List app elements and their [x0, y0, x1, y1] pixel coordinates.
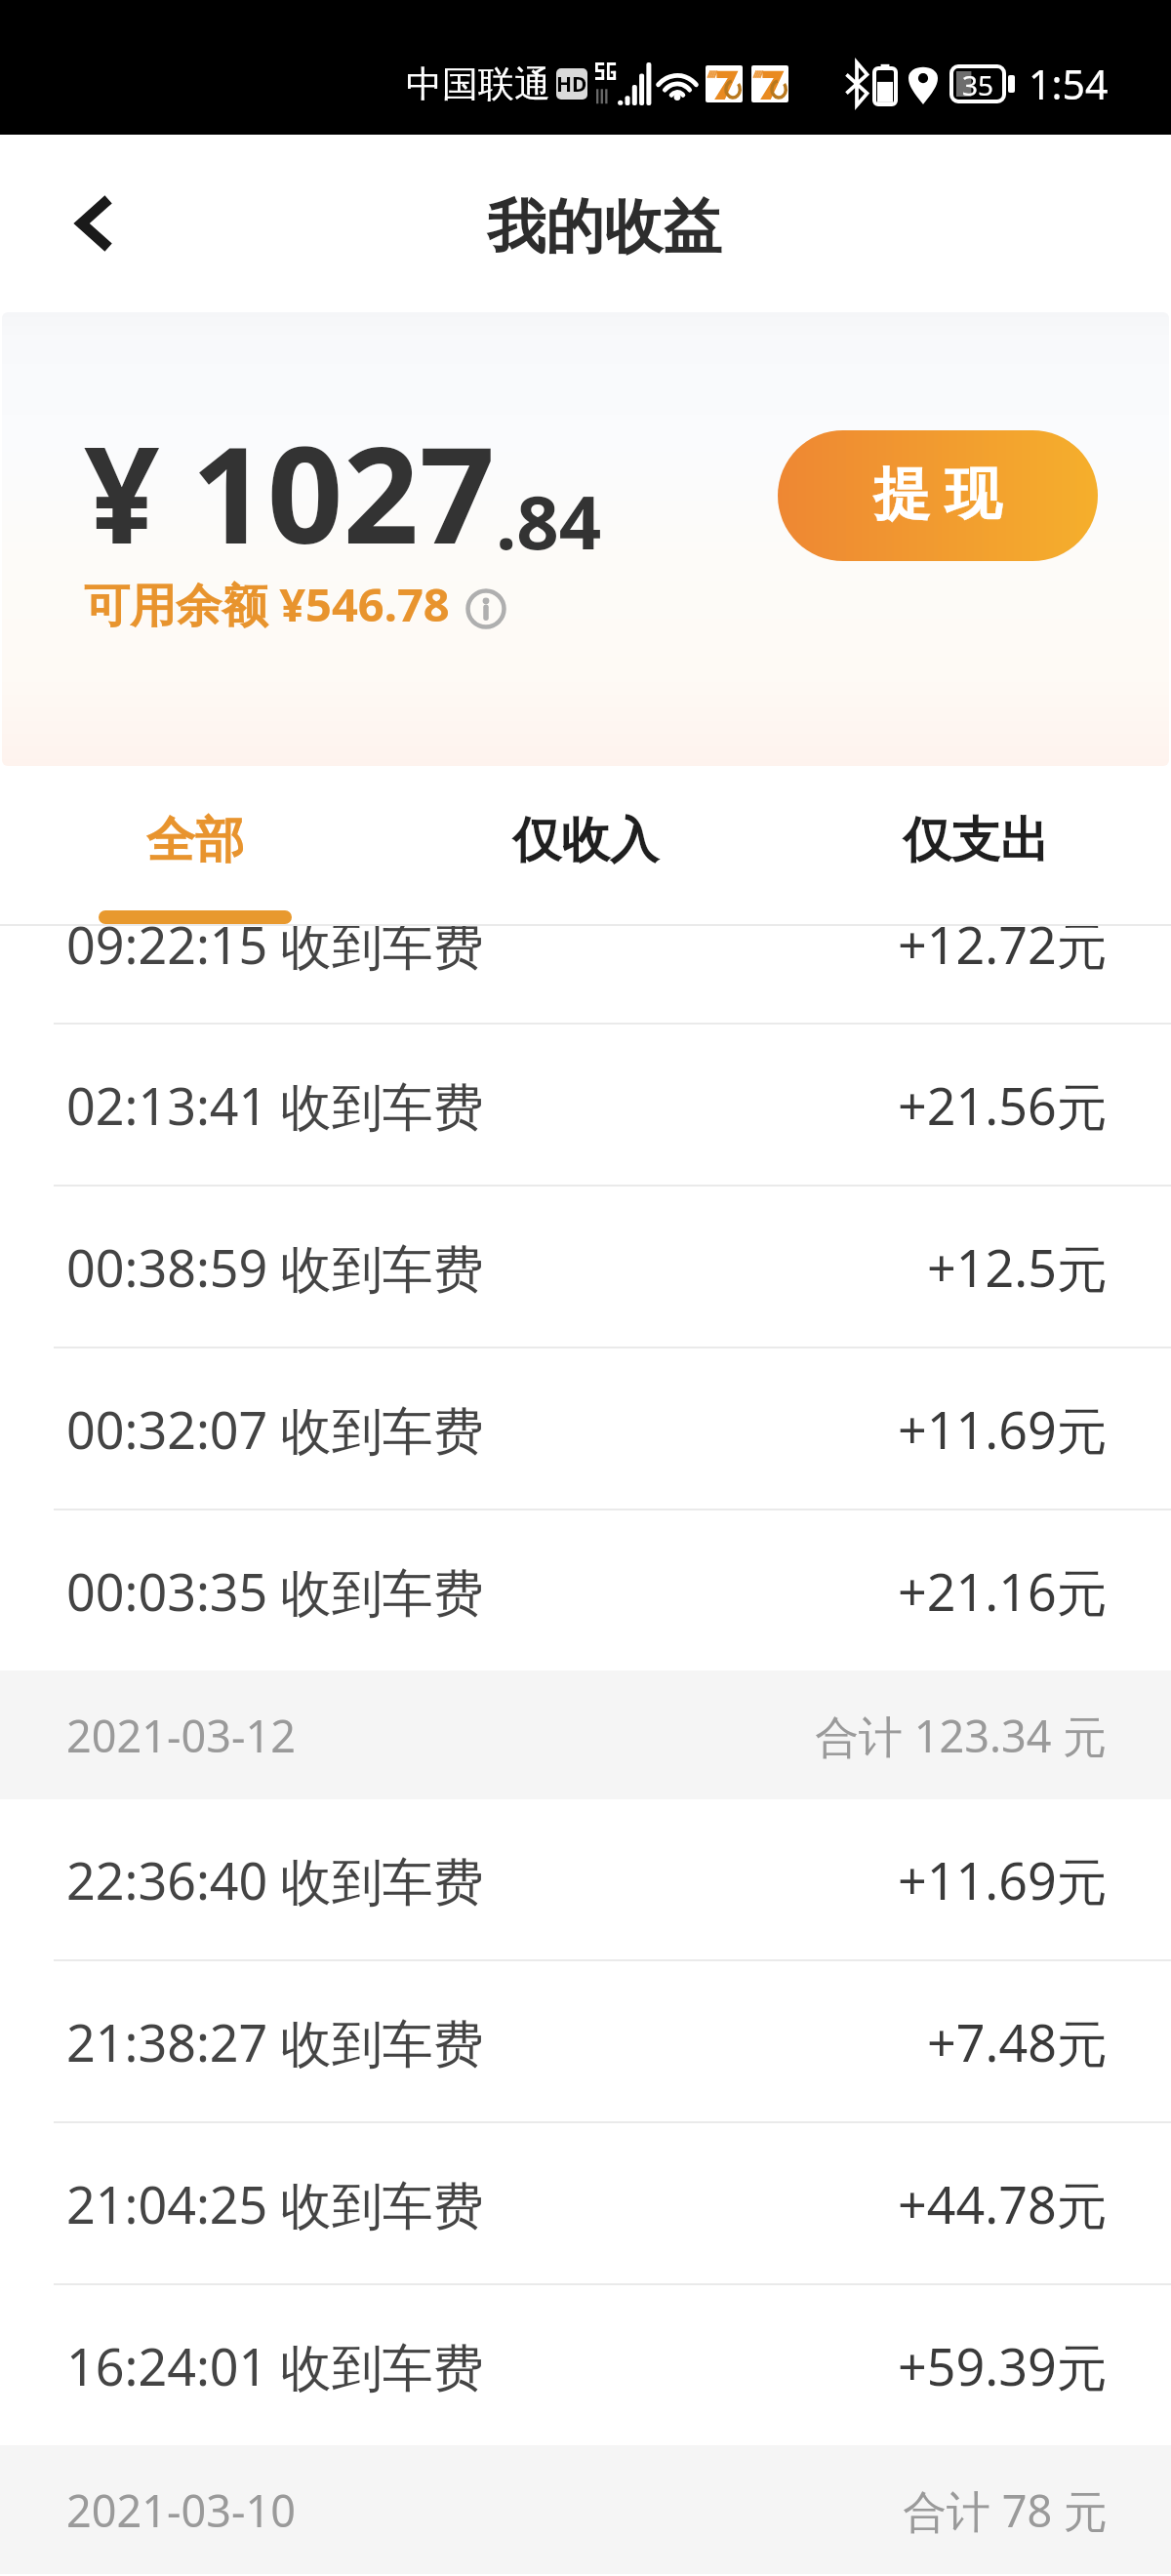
- staticText: 合计 78 元: [903, 2480, 1108, 2540]
- button[interactable]: 09:22:15 收到车费: [0, 926, 1171, 1023]
- staticText: +11.69元: [898, 1394, 1108, 1464]
- button[interactable]: 00:38:59 收到车费: [0, 1187, 1171, 1347]
- staticText: ¥: [84, 402, 160, 583]
- button[interactable]: 仅收入: [390, 767, 781, 924]
- staticText: 我的收益: [487, 190, 721, 264]
- staticText: +12.72元: [898, 926, 1108, 979]
- button[interactable]: 00:03:35 收到车费: [0, 1510, 1171, 1670]
- staticText: 35: [962, 66, 994, 101]
- staticText: +11.69元: [898, 1845, 1108, 1914]
- staticText: 提 现: [873, 453, 1002, 530]
- button[interactable]: 仅支出: [781, 767, 1171, 924]
- staticText: 00:32:07 收到车费: [66, 1394, 484, 1464]
- staticText: 2021-03-10: [66, 2480, 296, 2540]
- staticText: 中国联通: [406, 61, 550, 107]
- staticText: +44.78元: [898, 2169, 1108, 2238]
- staticText: HD: [556, 70, 587, 99]
- staticText: 22:36:40 收到车费: [66, 1845, 484, 1914]
- staticText: +21.56元: [898, 1070, 1108, 1140]
- staticText: 合计 123.34 元: [815, 1706, 1108, 1765]
- staticText: +12.5元: [927, 1232, 1108, 1302]
- staticText: 00:03:35 收到车费: [66, 1556, 484, 1626]
- button[interactable]: 22:36:40 收到车费: [0, 1799, 1171, 1959]
- staticText: 1027: [191, 402, 496, 583]
- staticText: .84: [496, 470, 602, 572]
- button[interactable]: 21:38:27 收到车费: [0, 1961, 1171, 2121]
- staticText: +21.16元: [898, 1556, 1108, 1626]
- button[interactable]: 全部: [0, 767, 390, 924]
- staticText: 02:13:41 收到车费: [66, 1070, 484, 1140]
- staticText: 09:22:15 收到车费: [66, 926, 484, 979]
- button[interactable]: 00:32:07 收到车费: [0, 1348, 1171, 1509]
- staticText: 21:04:25 收到车费: [66, 2169, 484, 2238]
- staticText: +59.39元: [898, 2331, 1108, 2400]
- staticText: 00:38:59 收到车费: [66, 1232, 484, 1302]
- staticText: 1:54: [1029, 57, 1109, 111]
- staticText: 可用余额 ¥546.78: [84, 573, 450, 635]
- button[interactable]: 21:04:25 收到车费: [0, 2123, 1171, 2283]
- staticText: 仅支出: [903, 810, 1049, 871]
- staticText: 仅收入: [512, 810, 659, 871]
- staticText: 全部: [146, 810, 244, 871]
- staticText: 21:38:27 收到车费: [66, 2007, 484, 2076]
- button[interactable]: Back: [37, 160, 148, 287]
- button[interactable]: 02:13:41 收到车费: [0, 1025, 1171, 1185]
- button[interactable]: 提 现: [778, 430, 1098, 561]
- button[interactable]: 16:24:01 收到车费: [0, 2285, 1171, 2445]
- staticText: 2021-03-12: [66, 1706, 296, 1765]
- staticText: +7.48元: [927, 2007, 1108, 2076]
- staticText: 16:24:01 收到车费: [66, 2331, 484, 2400]
